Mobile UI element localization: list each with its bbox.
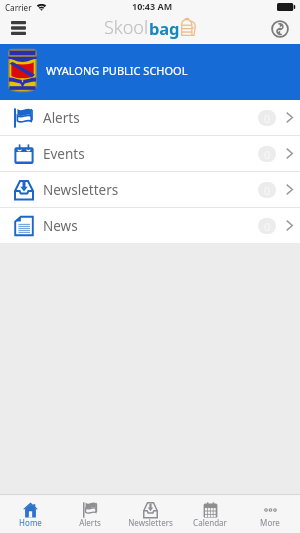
button[interactable]: Alerts	[60, 495, 120, 533]
staticText: Alerts	[79, 517, 101, 528]
button[interactable]: Alerts	[0, 100, 300, 135]
button[interactable]: Calendar	[180, 495, 240, 533]
staticText: Calendar	[193, 517, 227, 528]
staticText: 0	[264, 219, 271, 234]
staticText: bag	[149, 17, 180, 39]
button[interactable]: More	[240, 495, 300, 533]
staticText: 0	[264, 183, 271, 198]
button[interactable]: Newsletters	[0, 172, 300, 207]
staticText: Skool	[104, 15, 149, 40]
staticText: Carrier	[5, 2, 32, 13]
button[interactable]: Newsletters	[120, 495, 180, 533]
staticText: More	[260, 517, 280, 528]
staticText: Events	[43, 145, 85, 163]
staticText: Alerts	[43, 109, 80, 127]
staticText: Home	[19, 517, 42, 528]
staticText: WYALONG PUBLIC SCHOOL	[46, 63, 188, 78]
button[interactable]: Menu	[0, 13, 37, 43]
staticText: News	[43, 217, 78, 235]
button[interactable]: Events	[0, 136, 300, 171]
button[interactable]: WYALONG PUBLIC SCHOOL	[0, 44, 300, 100]
staticText: 0	[264, 111, 271, 126]
button[interactable]: Refresh	[265, 14, 295, 44]
button[interactable]: Home	[0, 495, 60, 533]
button[interactable]: News	[0, 208, 300, 243]
staticText: 0	[264, 147, 271, 162]
staticText: 10:43 AM	[132, 0, 173, 12]
staticText: Newsletters	[128, 517, 173, 528]
staticText: Newsletters	[43, 181, 119, 199]
